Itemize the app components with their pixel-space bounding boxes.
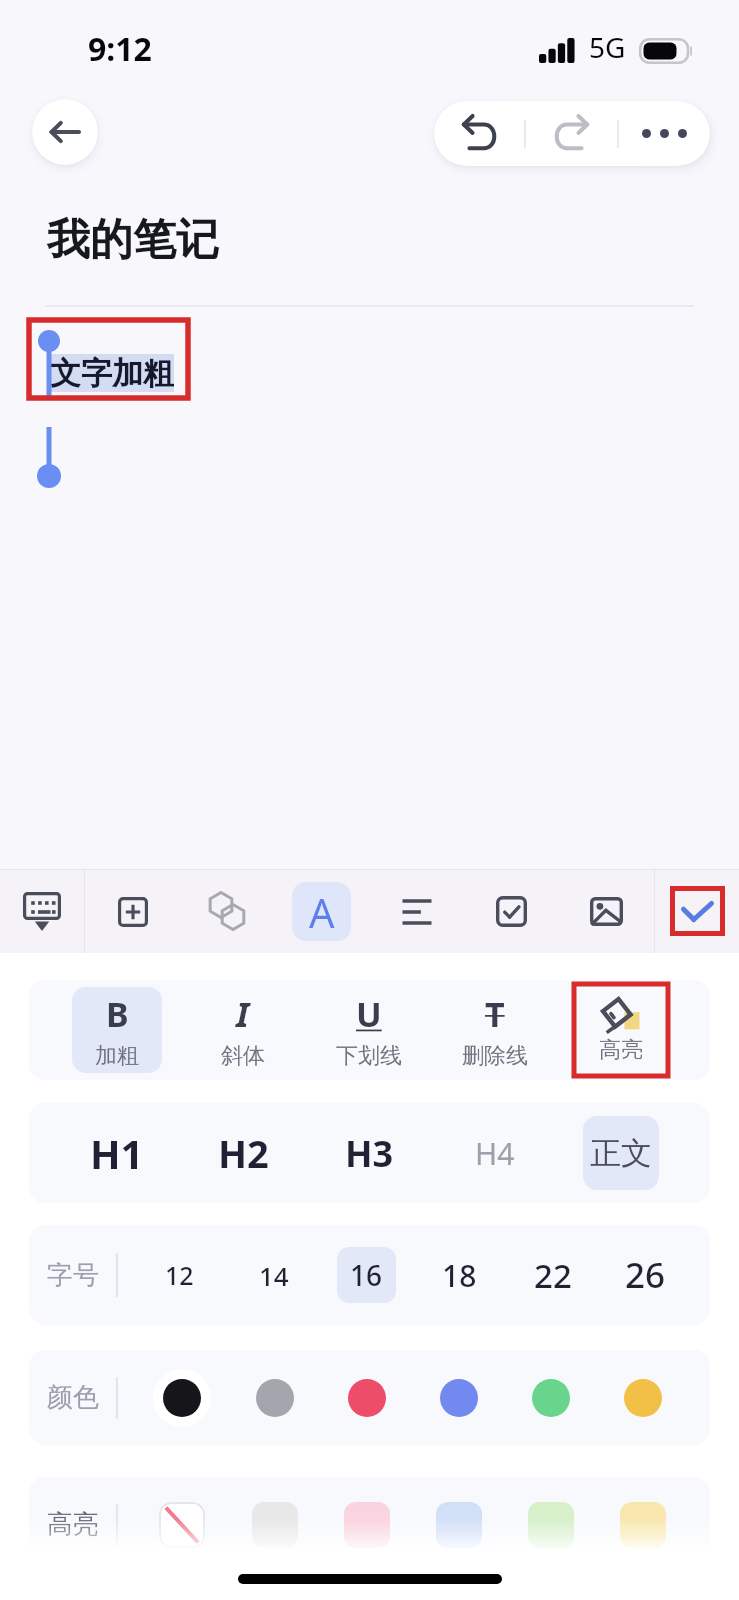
button[interactable]: Checklist <box>464 869 559 953</box>
button[interactable] <box>228 1350 321 1445</box>
staticText: 文字加粗 <box>50 354 174 392</box>
button[interactable] <box>135 1477 228 1572</box>
button[interactable]: 22 <box>506 1225 599 1325</box>
button[interactable]: 正文 <box>558 1103 684 1203</box>
staticText: 16 <box>350 1256 383 1294</box>
button[interactable]: H3 <box>306 1103 432 1203</box>
staticText: 删除线 <box>462 1042 528 1070</box>
staticText: 正文 <box>590 1134 652 1173</box>
button[interactable] <box>505 1350 597 1445</box>
staticText: H1 <box>90 1126 144 1180</box>
button[interactable]: U <box>306 980 432 1080</box>
button[interactable] <box>597 1350 689 1445</box>
button[interactable] <box>597 1477 689 1572</box>
staticText: 高亮 <box>47 1508 99 1541</box>
staticText: 26 <box>625 1251 666 1299</box>
button[interactable]: 14 <box>226 1225 320 1325</box>
button[interactable]: Redo <box>526 101 617 166</box>
staticText: 斜体 <box>221 1042 265 1070</box>
button[interactable] <box>505 1477 597 1572</box>
button[interactable]: 16 <box>320 1225 413 1325</box>
button[interactable]: I <box>180 980 306 1080</box>
button[interactable]: Text format <box>274 869 369 953</box>
button[interactable]: 26 <box>599 1225 692 1325</box>
staticText: I <box>236 991 250 1037</box>
button[interactable] <box>321 1477 413 1572</box>
button[interactable]: H1 <box>54 1103 180 1203</box>
staticText: T <box>485 991 505 1037</box>
staticText: 9:12 <box>88 27 152 71</box>
staticText: H4 <box>475 1133 515 1174</box>
button[interactable]: Done <box>655 869 739 953</box>
button[interactable]: H4 <box>432 1103 558 1203</box>
staticText: H2 <box>218 1127 269 1179</box>
button[interactable]: T <box>432 980 558 1080</box>
staticText: H3 <box>345 1129 394 1178</box>
button[interactable] <box>413 1477 505 1572</box>
staticText: 高亮 <box>599 1036 643 1064</box>
button[interactable]: 高亮 <box>558 980 684 1080</box>
button[interactable]: 18 <box>413 1225 506 1325</box>
button[interactable]: 12 <box>132 1225 226 1325</box>
staticText: U <box>356 991 382 1037</box>
button[interactable]: B <box>54 980 180 1080</box>
staticText: 22 <box>534 1253 572 1298</box>
staticText: 14 <box>259 1258 289 1293</box>
staticText: 5G <box>589 28 626 66</box>
button[interactable]: H2 <box>180 1103 306 1203</box>
staticText: A <box>309 885 335 939</box>
button[interactable] <box>228 1477 321 1572</box>
button[interactable]: More options <box>619 101 710 166</box>
staticText: 颜色 <box>47 1381 99 1414</box>
staticText: 12 <box>165 1258 194 1292</box>
staticText: 字号 <box>47 1259 99 1292</box>
staticText: B <box>106 991 129 1037</box>
button[interactable]: 文字加粗 <box>50 354 174 392</box>
button[interactable]: Back <box>32 99 98 165</box>
button[interactable]: Keyboard <box>0 869 84 953</box>
button[interactable] <box>413 1350 505 1445</box>
button[interactable]: List <box>369 869 464 953</box>
staticText: 我的笔记 <box>47 213 219 267</box>
button[interactable]: Shapes <box>179 869 274 953</box>
staticText: 加粗 <box>95 1042 139 1070</box>
button[interactable]: Image <box>559 869 654 953</box>
button[interactable] <box>321 1350 413 1445</box>
staticText: 下划线 <box>336 1042 402 1070</box>
button[interactable]: Insert <box>85 869 179 953</box>
staticText: 18 <box>442 1255 477 1296</box>
button[interactable] <box>135 1350 228 1445</box>
button[interactable]: Undo <box>434 101 524 166</box>
